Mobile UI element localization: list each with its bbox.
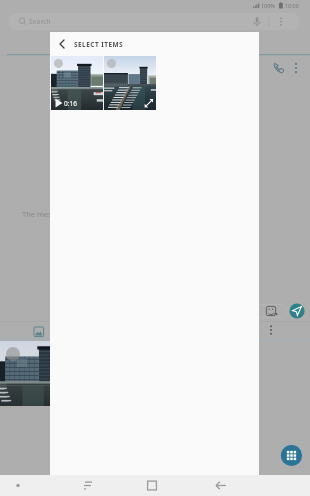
button[interactable]: Recents bbox=[76, 475, 100, 496]
staticText: 100% bbox=[261, 2, 275, 9]
button[interactable]: Select video bbox=[51, 56, 103, 110]
button[interactable]: Select photo bbox=[104, 56, 156, 110]
button[interactable]: Apps bbox=[280, 444, 303, 467]
staticText: Search bbox=[29, 17, 51, 26]
staticText: 10:00 bbox=[285, 2, 299, 9]
button[interactable]: Search bbox=[8, 13, 300, 30]
button[interactable]: Send bbox=[286, 300, 308, 322]
staticText: The message bbox=[22, 209, 69, 219]
button[interactable]: Message field bbox=[230, 304, 287, 318]
button[interactable]: Hide navigation bar bbox=[6, 475, 30, 496]
button[interactable]: Back bbox=[50, 32, 74, 56]
button[interactable]: Back bbox=[209, 475, 233, 496]
staticText: 0:16 bbox=[64, 99, 77, 108]
button[interactable]: Gallery bbox=[30, 323, 47, 341]
staticText: SELECT ITEMS bbox=[74, 40, 124, 49]
button[interactable]: Home bbox=[140, 475, 164, 496]
